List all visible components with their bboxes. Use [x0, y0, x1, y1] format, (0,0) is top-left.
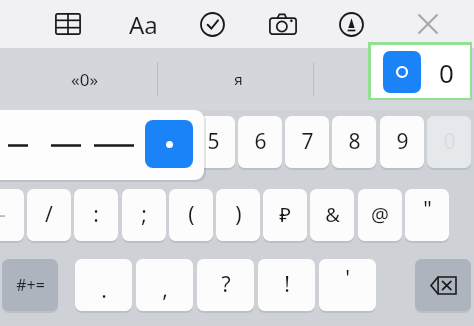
staticText: ' — [345, 264, 350, 293]
staticText: 1 — [18, 127, 31, 156]
button[interactable]: Markup — [332, 7, 370, 41]
button[interactable]: 3 — [96, 116, 140, 168]
button[interactable]: - — [0, 189, 24, 241]
button[interactable] — [92, 116, 136, 174]
staticText: 2 — [65, 127, 78, 156]
staticText: 0 — [439, 55, 454, 90]
staticText: #+= — [16, 274, 45, 296]
button[interactable]: " — [405, 189, 449, 241]
staticText: ? — [221, 270, 231, 299]
button[interactable]: 1 — [2, 116, 46, 168]
button[interactable]: Insert table — [48, 7, 88, 41]
staticText: 5 — [207, 127, 220, 156]
button[interactable]: ; — [122, 189, 166, 241]
button[interactable]: ₽ — [263, 189, 307, 241]
staticText: 3 — [112, 127, 125, 156]
button[interactable]: «0» — [20, 58, 150, 100]
staticText: ! — [284, 270, 290, 299]
button[interactable]: Camera — [263, 7, 303, 41]
button[interactable]: Symbols — [2, 259, 58, 311]
staticText: , — [162, 275, 168, 304]
button[interactable]: / — [27, 189, 71, 241]
button[interactable]: я — [175, 58, 301, 100]
staticText: я — [234, 69, 243, 89]
staticText: ) — [235, 200, 242, 229]
button[interactable]: : — [74, 189, 118, 241]
staticText: ( — [188, 200, 195, 229]
staticText: @ — [371, 201, 389, 228]
staticText: ₽ — [279, 201, 291, 228]
button[interactable]: 0 — [371, 45, 470, 98]
staticText: 6 — [254, 127, 267, 156]
button[interactable]: 2 — [49, 116, 93, 168]
button[interactable]: 4 — [144, 116, 188, 168]
staticText: Aa — [129, 8, 158, 41]
button[interactable]: 0 — [427, 116, 471, 168]
button[interactable]: Close — [409, 7, 447, 41]
button[interactable]: 9 — [380, 116, 424, 168]
button[interactable]: ' — [319, 259, 376, 311]
staticText: 0 — [443, 127, 456, 156]
staticText: & — [325, 201, 340, 228]
staticText: 9 — [396, 127, 409, 156]
button[interactable]: Aa — [122, 5, 164, 43]
button[interactable]: , — [136, 259, 193, 311]
staticText: 7 — [301, 127, 314, 156]
staticText: - — [0, 200, 6, 229]
button[interactable]: 5 — [191, 116, 235, 168]
button[interactable] — [0, 116, 40, 174]
staticText: / — [45, 200, 53, 229]
button[interactable]: ) — [216, 189, 260, 241]
button[interactable]: 8 — [332, 116, 376, 168]
button[interactable]: 7 — [285, 116, 329, 168]
staticText: 4 — [160, 127, 173, 156]
button[interactable]: . — [75, 259, 132, 311]
staticText: «0» — [71, 68, 99, 91]
staticText: : — [93, 200, 99, 229]
button[interactable]: Backspace — [415, 259, 471, 311]
staticText: . — [101, 276, 107, 305]
button[interactable]: 6 — [238, 116, 282, 168]
staticText: " — [423, 195, 432, 224]
button[interactable] — [44, 116, 88, 174]
button[interactable]: Selected variant — [145, 120, 193, 168]
staticText: ; — [141, 200, 147, 229]
button[interactable]: @ — [358, 189, 402, 241]
button[interactable]: ( — [169, 189, 213, 241]
button[interactable]: ? — [197, 259, 254, 311]
button[interactable]: ! — [258, 259, 315, 311]
button[interactable]: & — [310, 189, 354, 241]
button[interactable]: Checklist — [193, 7, 231, 41]
staticText: 8 — [348, 127, 361, 156]
